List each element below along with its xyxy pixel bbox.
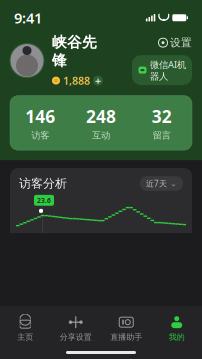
staticText: 1,888	[63, 73, 90, 88]
staticText: 主页	[17, 332, 33, 342]
staticText: 点击	[18, 309, 34, 319]
staticText: 留言	[153, 130, 171, 141]
staticText: 248	[86, 105, 116, 128]
button[interactable]: 主页	[0, 313, 50, 344]
staticText: 我的	[169, 332, 185, 342]
staticText: 微信AI机器人	[150, 58, 186, 82]
button[interactable]: 直播助手	[101, 313, 151, 344]
staticText: 9:41	[14, 8, 42, 27]
staticText: 访客	[31, 130, 49, 141]
button[interactable]: 我的	[151, 313, 202, 344]
button[interactable]: 分享设置	[50, 313, 101, 344]
staticText: +	[95, 73, 101, 88]
button[interactable]: 近7天	[140, 176, 183, 191]
staticText: 分享设置	[60, 332, 92, 342]
staticText: 32	[152, 105, 172, 128]
button[interactable]: 设置	[158, 36, 192, 49]
staticText: ⌄	[170, 179, 177, 188]
staticText: 直播助手	[110, 332, 142, 342]
staticText: 访客分析	[19, 176, 67, 191]
button[interactable]: Add coins	[93, 76, 103, 86]
staticText: 互动	[92, 130, 110, 141]
staticText: 23.6	[37, 196, 51, 205]
staticText: 峡谷先锋	[52, 33, 97, 69]
staticText: 146	[25, 105, 55, 128]
staticText: 92	[174, 308, 184, 320]
staticText: 近7天	[146, 178, 167, 189]
staticText: 设置	[170, 36, 192, 49]
button[interactable]: 微信AI机器人	[132, 55, 192, 85]
